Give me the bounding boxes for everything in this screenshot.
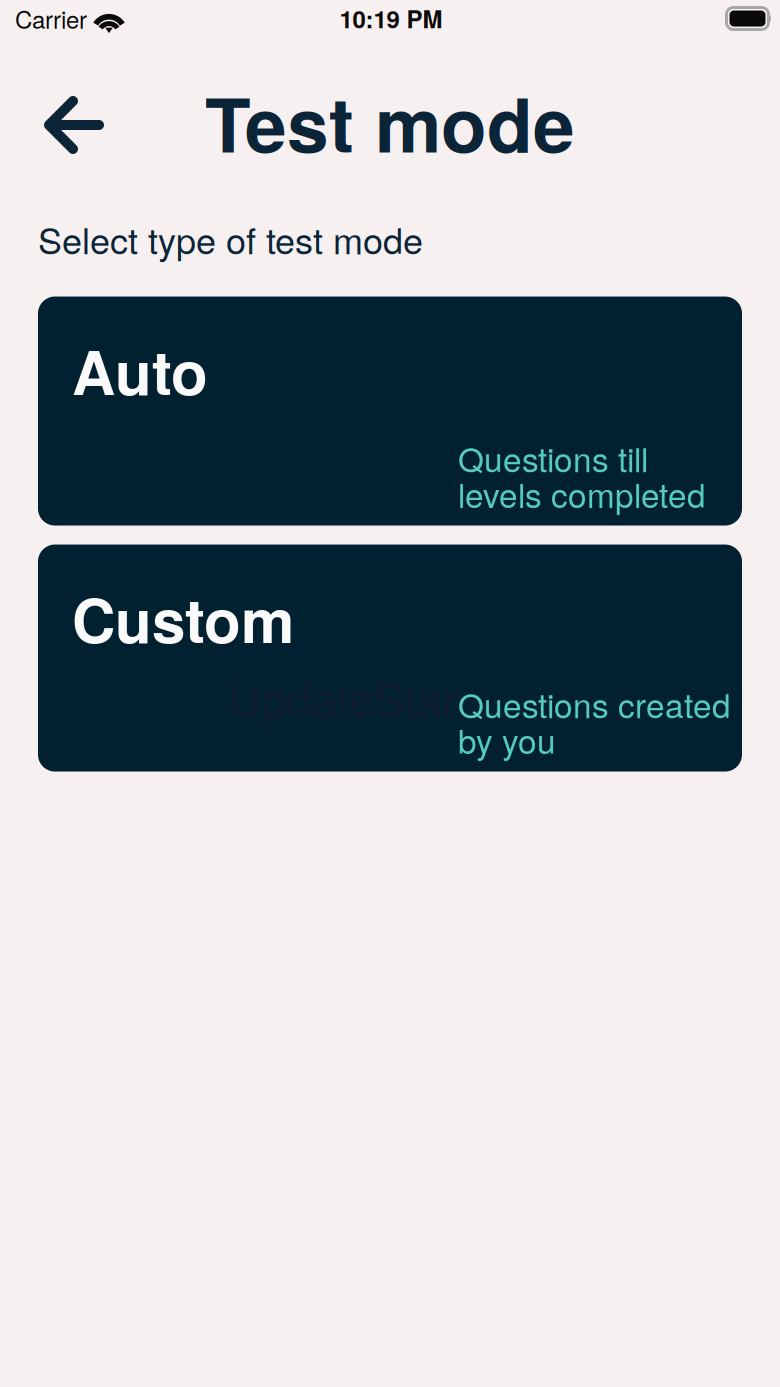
button[interactable]: UpdateStar (38, 545, 742, 772)
staticText: levels completed (458, 470, 706, 517)
staticText: UpdateStar (229, 665, 457, 729)
staticText: Test mode (205, 68, 575, 175)
button[interactable]: Auto (38, 297, 742, 526)
staticText: Carrier (15, 1, 87, 36)
button[interactable]: Back (31, 76, 117, 168)
staticText: Custom (72, 576, 294, 661)
staticText: Select type of test mode (38, 213, 423, 265)
staticText: Auto (72, 328, 208, 413)
staticText: Questions till (458, 434, 648, 482)
staticText: Questions created (458, 680, 731, 728)
staticText: by you (458, 716, 556, 763)
staticText: 10:19 PM (339, 1, 442, 36)
